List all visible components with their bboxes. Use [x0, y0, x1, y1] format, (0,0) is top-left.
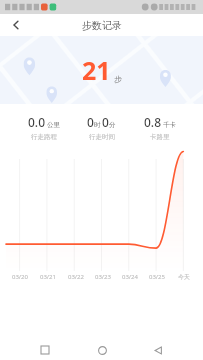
staticText: 03/20	[12, 273, 28, 281]
button[interactable]: Recents	[34, 340, 56, 360]
staticText: 分	[109, 121, 116, 129]
button[interactable]: Back	[4, 14, 28, 36]
staticText: 21	[82, 53, 111, 87]
staticText: 0	[87, 114, 94, 130]
button[interactable]: Home	[91, 340, 113, 360]
staticText: 行走路程	[31, 133, 57, 141]
staticText: 卡路里	[150, 133, 170, 141]
staticText: 0.8	[144, 114, 161, 130]
staticText: 03/22	[68, 273, 84, 281]
staticText: 03/23	[95, 273, 111, 281]
staticText: 千卡	[163, 121, 176, 129]
button[interactable]: Back	[147, 340, 169, 360]
staticText: 行走时间	[89, 133, 115, 141]
staticText: 03/21	[40, 273, 56, 281]
staticText: 时	[94, 121, 101, 129]
staticText: 03/24	[122, 273, 138, 281]
staticText: 0.0	[28, 114, 45, 130]
staticText: 公里	[47, 121, 60, 129]
staticText: 03/25	[149, 273, 165, 281]
staticText: 今天	[178, 273, 190, 281]
staticText: 0	[102, 114, 109, 130]
staticText: 步数记录	[82, 19, 122, 32]
staticText: 步	[114, 74, 122, 84]
